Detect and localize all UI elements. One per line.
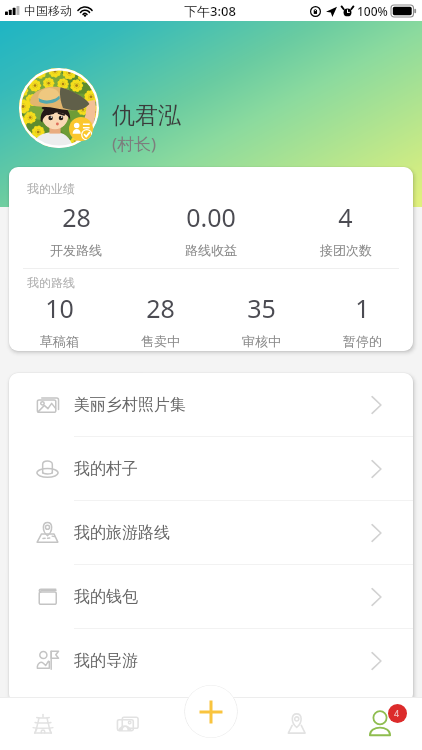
staticText: 35 (247, 291, 276, 325)
staticText: 开发路线 (50, 242, 102, 258)
staticText: (村长) (112, 132, 157, 155)
button[interactable]: Me (338, 697, 422, 750)
staticText: 接团次数 (320, 242, 372, 258)
staticText: 草稿箱 (40, 333, 79, 349)
button[interactable]: 我的村子 (9, 437, 413, 501)
button[interactable]: 1 (312, 291, 413, 349)
staticText: 我的导游 (74, 651, 138, 671)
button[interactable]: Add (184, 685, 238, 738)
staticText: 我的钱包 (74, 587, 138, 607)
staticText: 审核中 (242, 333, 281, 349)
button[interactable]: Routes (254, 697, 338, 750)
staticText: 我的旅游路线 (74, 523, 170, 543)
button[interactable]: 4 (278, 200, 413, 258)
button[interactable]: 美丽乡村照片集 (9, 373, 413, 437)
staticText: 我的业绩 (27, 181, 75, 196)
staticText: 10 (45, 291, 74, 325)
button[interactable]: Photos (85, 697, 170, 750)
staticText: 我的村子 (74, 459, 138, 479)
staticText: 中国移动 (24, 3, 72, 18)
staticText: 4 (338, 200, 353, 234)
button[interactable]: 0.00 (143, 200, 278, 258)
staticText: 暂停的 (343, 333, 382, 349)
button[interactable]: 我的钱包 (9, 565, 413, 629)
button[interactable]: 10 (9, 291, 110, 349)
button[interactable]: 我的旅游路线 (9, 501, 413, 565)
button[interactable]: 28 (9, 200, 143, 258)
button[interactable]: Village (0, 697, 85, 750)
staticText: 仇君泓 (112, 101, 181, 130)
staticText: 1 (355, 291, 370, 325)
staticText: 28 (62, 200, 91, 234)
staticText: 我的路线 (27, 275, 75, 290)
staticText: 100% (357, 3, 388, 19)
button[interactable]: 28 (110, 291, 211, 349)
staticText: 0.00 (186, 200, 236, 234)
staticText: 4 (394, 707, 400, 719)
staticText: 28 (146, 291, 175, 325)
staticText: 路线收益 (185, 242, 237, 258)
button[interactable]: 我的导游 (9, 629, 413, 692)
staticText: 美丽乡村照片集 (74, 395, 186, 415)
button[interactable]: 35 (211, 291, 312, 349)
staticText: 售卖中 (141, 333, 180, 349)
staticText: 下午3:08 (184, 2, 236, 20)
